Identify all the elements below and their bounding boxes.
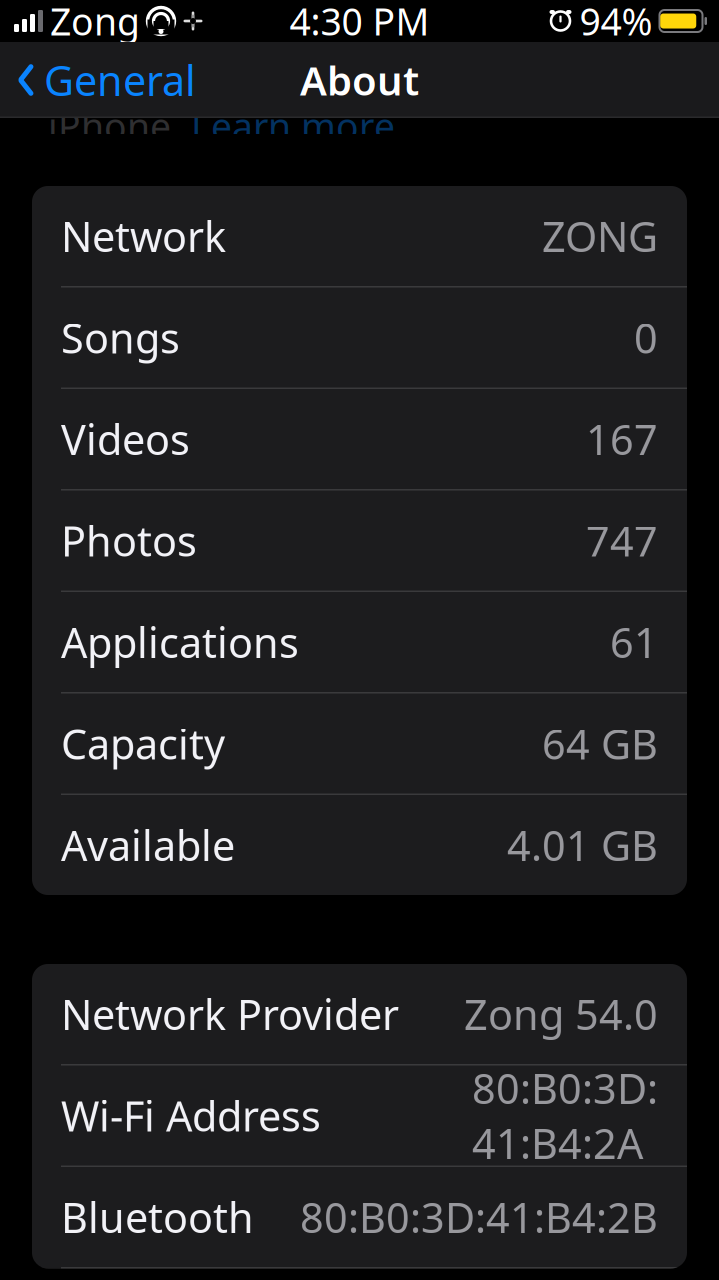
staticText: Videos (61, 412, 190, 466)
staticText: ZONG (542, 209, 658, 263)
staticText: 80:B0:3D:41:B4:2B (300, 1190, 658, 1244)
staticText: General (44, 53, 196, 107)
staticText: Learn more... (191, 101, 425, 151)
staticText: 747 (586, 513, 658, 568)
staticText: Zong (50, 0, 140, 46)
button[interactable]: Network (32, 186, 687, 287)
button[interactable]: Songs (32, 287, 687, 389)
button[interactable]: Wi-Fi Address (32, 1065, 687, 1167)
staticText: Zong 54.0 (464, 987, 658, 1041)
button[interactable]: Network Provider (32, 964, 687, 1065)
staticText: 80:B0:3D:41:B4:2A (472, 1061, 658, 1170)
staticText: 4:30 PM (289, 0, 429, 46)
staticText: Available (61, 818, 235, 872)
button[interactable]: Photos (32, 490, 687, 592)
staticText: Applications (61, 615, 299, 669)
button[interactable]: Applications (32, 592, 687, 693)
staticText: 61 (610, 615, 658, 669)
staticText: Network Provider (61, 987, 399, 1041)
staticText: 94% (579, 0, 652, 46)
staticText: Photos (61, 513, 197, 568)
button[interactable]: Videos (32, 389, 687, 490)
button[interactable]: General (0, 42, 208, 118)
button[interactable]: Bluetooth (32, 1167, 687, 1268)
staticText: 167 (586, 412, 658, 466)
staticText: 4.01 GB (507, 818, 658, 872)
staticText: 0 (634, 310, 658, 365)
staticText: Wi-Fi Address (61, 1088, 321, 1143)
button[interactable]: Available (32, 795, 687, 895)
button[interactable]: Capacity (32, 693, 687, 795)
staticText: iPhone. (48, 101, 191, 151)
staticText: Bluetooth (61, 1190, 254, 1244)
staticText: Capacity (61, 716, 225, 771)
staticText: Network (61, 209, 226, 263)
staticText: 64 GB (542, 716, 658, 771)
staticText: Songs (61, 310, 180, 365)
staticText: About (300, 53, 419, 106)
